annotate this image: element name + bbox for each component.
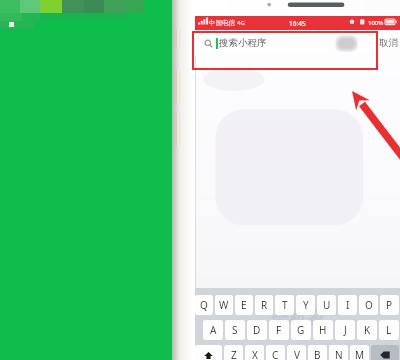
button[interactable]: V (287, 345, 306, 360)
button[interactable]: C (266, 345, 285, 360)
staticText: 100% (368, 19, 384, 27)
staticText: Y (303, 298, 309, 312)
button[interactable]: X (245, 345, 264, 360)
button[interactable]: D (247, 320, 267, 340)
staticText: 搜索小程序 (219, 37, 267, 49)
button[interactable]: K (357, 320, 377, 340)
button[interactable]: L (379, 320, 399, 340)
staticText: X (252, 348, 258, 360)
staticText: I (346, 298, 350, 312)
staticText: F (276, 323, 282, 337)
staticText: K (364, 323, 371, 337)
staticText: G (297, 323, 305, 337)
staticText: 16:45 (289, 19, 306, 28)
button[interactable]: F (269, 320, 289, 340)
button[interactable]: R (255, 295, 273, 315)
button[interactable]: G (291, 320, 311, 340)
staticText: W (219, 298, 229, 312)
staticText: D (253, 323, 261, 337)
staticText: A (210, 323, 217, 337)
button[interactable]: Shift (195, 345, 222, 360)
button[interactable]: W (215, 295, 233, 315)
staticText: 中国电信 (209, 19, 235, 27)
button[interactable]: I (338, 295, 357, 315)
button[interactable]: Backspace (371, 345, 399, 360)
staticText: R (261, 298, 268, 312)
button[interactable]: E (235, 295, 253, 315)
button[interactable]: A (203, 320, 223, 340)
staticText: M (355, 348, 365, 360)
staticText: H (319, 323, 327, 337)
staticText: B (314, 348, 321, 360)
button[interactable]: M (350, 345, 369, 360)
button[interactable]: U (317, 295, 336, 315)
button[interactable]: 取消 (379, 33, 398, 53)
staticText: Z (231, 348, 237, 360)
staticText: 金机家 (271, 308, 325, 331)
button[interactable]: O (359, 295, 378, 315)
button[interactable]: J (335, 320, 355, 340)
button[interactable]: H (313, 320, 333, 340)
button[interactable]: T (275, 295, 294, 315)
staticText: www.wa.up.on (273, 332, 322, 342)
button[interactable]: N (329, 345, 348, 360)
staticText: S (232, 323, 238, 337)
staticText: 取消 (379, 37, 398, 49)
button[interactable]: B (308, 345, 327, 360)
staticText: N (335, 348, 343, 360)
staticText: C (272, 348, 279, 360)
staticText: E (241, 298, 247, 312)
staticText: J (344, 323, 347, 337)
button[interactable]: S (225, 320, 245, 340)
button[interactable]: Q (195, 295, 213, 315)
staticText: P (386, 298, 393, 312)
staticText: Q (200, 298, 208, 312)
staticText: T (282, 298, 288, 312)
staticText: L (386, 323, 392, 337)
button[interactable]: 搜索小程序 (200, 34, 375, 52)
button[interactable]: Z (224, 345, 243, 360)
staticText: 4G (237, 19, 245, 27)
button[interactable]: P (380, 295, 399, 315)
staticText: V (294, 348, 300, 360)
staticText: O (365, 298, 373, 312)
button[interactable]: Y (296, 295, 315, 315)
staticText: U (323, 298, 331, 312)
